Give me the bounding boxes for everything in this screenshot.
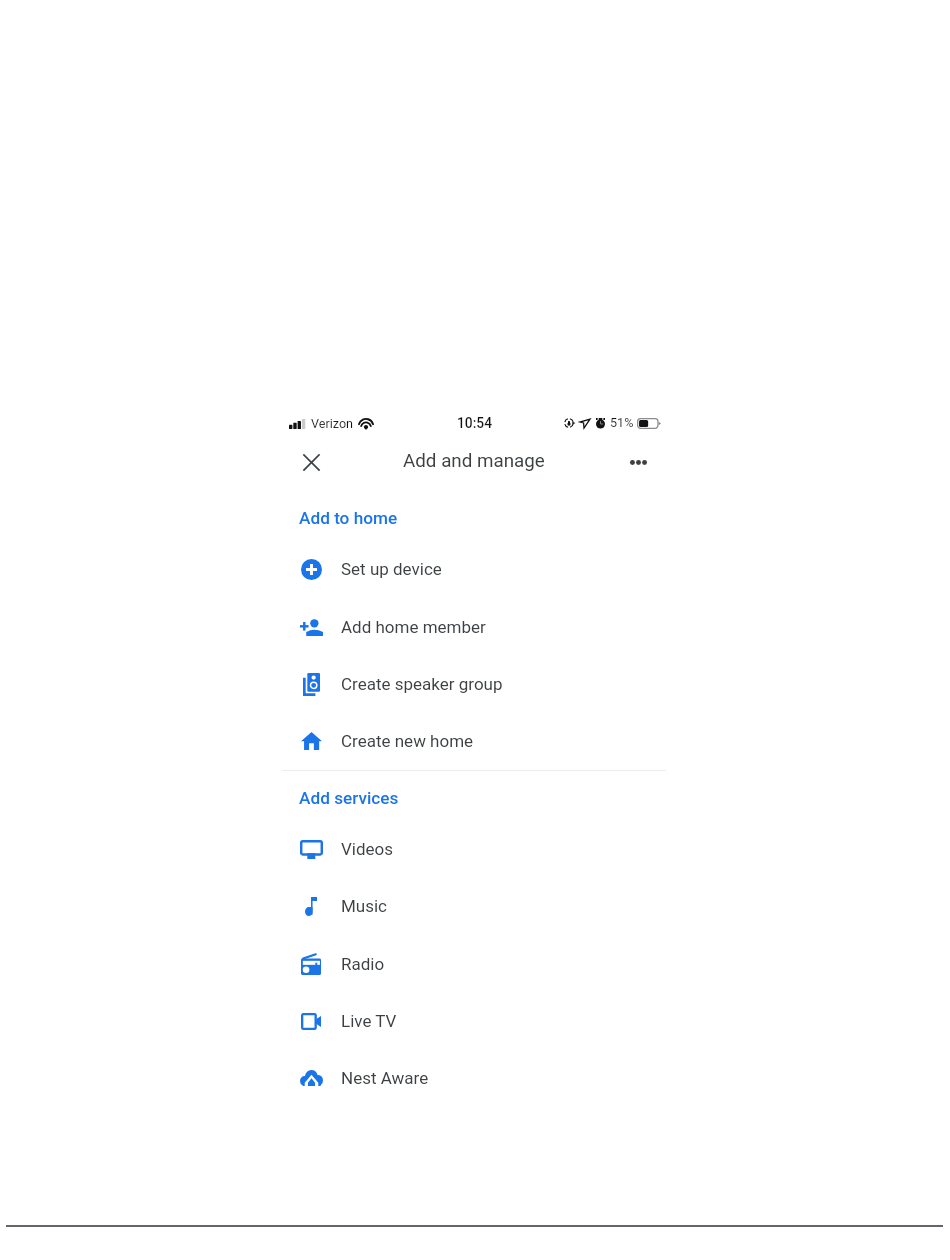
staticText: Set up device: [341, 559, 442, 579]
staticText: Add to home: [299, 508, 398, 528]
button[interactable]: Nest Aware: [282, 1049, 666, 1107]
button[interactable]: More options: [620, 444, 656, 480]
button[interactable]: Videos: [282, 820, 666, 878]
staticText: Music: [341, 896, 388, 916]
staticText: 51%: [610, 415, 634, 430]
staticText: Create speaker group: [341, 674, 503, 694]
staticText: Create new home: [341, 731, 474, 751]
button[interactable]: Create speaker group: [282, 655, 666, 713]
button[interactable]: Add home member: [282, 598, 666, 656]
staticText: Add home member: [341, 617, 486, 637]
staticText: Add services: [299, 788, 399, 808]
button[interactable]: Music: [282, 877, 666, 935]
staticText: Radio: [341, 954, 385, 974]
button[interactable]: Set up device: [282, 540, 666, 598]
staticText: Videos: [341, 839, 394, 859]
staticText: Live TV: [341, 1011, 397, 1031]
staticText: Verizon: [311, 416, 354, 431]
button[interactable]: Create new home: [282, 712, 666, 770]
button[interactable]: Close: [293, 444, 329, 480]
button[interactable]: Radio: [282, 935, 666, 993]
staticText: 10:54: [457, 415, 493, 431]
staticText: Add and manage: [403, 450, 545, 472]
button[interactable]: Live TV: [282, 992, 666, 1050]
staticText: Nest Aware: [341, 1068, 429, 1088]
